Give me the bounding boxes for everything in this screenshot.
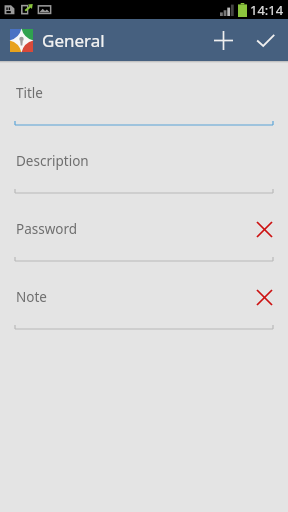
button[interactable]: Note: [0, 262, 288, 330]
staticText: 14:14: [250, 1, 284, 19]
staticText: Description: [16, 152, 89, 170]
button[interactable]: Description: [0, 126, 288, 194]
staticText: Note: [16, 288, 47, 306]
button[interactable]: Password: [0, 194, 288, 262]
button[interactable]: Save: [244, 19, 286, 61]
button[interactable]: Delete Note: [248, 286, 280, 308]
staticText: General: [42, 29, 105, 52]
button[interactable]: Delete Password: [248, 218, 280, 240]
staticText: Password: [16, 220, 78, 238]
button[interactable]: Title: [0, 71, 288, 126]
staticText: Title: [16, 84, 43, 102]
button[interactable]: Add: [202, 19, 244, 61]
button[interactable]: App icon: [10, 29, 33, 52]
